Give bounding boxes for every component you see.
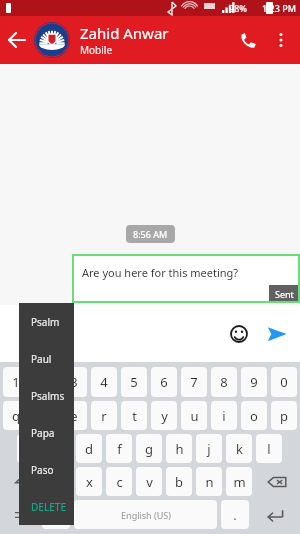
- staticText: 1: [12, 373, 20, 391]
- staticText: 5: [130, 373, 138, 391]
- button[interactable]: v: [136, 467, 162, 496]
- button[interactable]: s: [46, 434, 72, 463]
- button[interactable]: d: [76, 434, 102, 463]
- button[interactable]: z: [47, 467, 72, 496]
- button[interactable]: Are you here for this meeting?: [72, 254, 300, 303]
- button[interactable]: u: [181, 401, 207, 430]
- staticText: 0: [280, 373, 288, 391]
- button[interactable]: p: [271, 401, 297, 430]
- button[interactable]: 9: [241, 367, 267, 397]
- button[interactable]: j: [196, 434, 222, 463]
- button[interactable]: o: [241, 401, 267, 430]
- staticText: 3: [70, 373, 78, 391]
- button[interactable]: 3: [61, 367, 87, 397]
- button[interactable]: b: [166, 467, 192, 496]
- staticText: q: [12, 407, 20, 425]
- button[interactable]: ,: [42, 500, 70, 529]
- button[interactable]: i: [211, 401, 237, 430]
- button[interactable]: 8: [211, 367, 237, 397]
- staticText: ,: [54, 506, 58, 524]
- button[interactable]: Emoji: [224, 319, 254, 349]
- staticText: 8:56 AM: [133, 228, 168, 240]
- staticText: Sent: [275, 288, 294, 300]
- staticText: x: [86, 473, 93, 491]
- staticText: Psalm: [31, 315, 60, 329]
- button[interactable]: Shift: [3, 467, 43, 496]
- staticText: 4: [100, 373, 108, 391]
- staticText: n: [205, 473, 214, 491]
- staticText: Zahid Anwar: [80, 23, 169, 43]
- button[interactable]: DELETE: [19, 488, 74, 525]
- button[interactable]: f: [106, 434, 132, 463]
- staticText: k: [236, 440, 243, 458]
- button[interactable]: x: [76, 467, 102, 496]
- staticText: 6: [160, 373, 168, 391]
- staticText: 1:23 PM: [262, 2, 296, 14]
- button[interactable]: Paul: [19, 340, 74, 377]
- button[interactable]: w: [32, 401, 57, 430]
- button[interactable]: y: [151, 401, 177, 430]
- staticText: t: [132, 407, 137, 425]
- button[interactable]: h: [166, 434, 192, 463]
- button[interactable]: 1: [3, 367, 28, 397]
- button[interactable]: m: [226, 467, 252, 496]
- staticText: u: [190, 407, 199, 425]
- button[interactable]: k: [226, 434, 252, 463]
- staticText: 98%: [229, 2, 247, 14]
- button[interactable]: 4: [91, 367, 117, 397]
- button[interactable]: Backspace: [256, 467, 297, 496]
- button[interactable]: Send: [262, 319, 292, 349]
- button[interactable]: g: [136, 434, 162, 463]
- staticText: e: [70, 407, 78, 425]
- button[interactable]: Papa: [19, 414, 74, 451]
- staticText: Mobile: [80, 43, 113, 57]
- button[interactable]: Call: [230, 22, 266, 58]
- button[interactable]: English (US): [74, 500, 217, 529]
- staticText: English (US): [121, 509, 171, 521]
- button[interactable]: Psalms: [19, 377, 74, 414]
- button[interactable]: Enter: [253, 500, 297, 529]
- button[interactable]: 6: [151, 367, 177, 397]
- staticText: i: [222, 407, 226, 425]
- button[interactable]: t: [121, 401, 147, 430]
- staticText: r: [101, 407, 107, 425]
- staticText: 7: [190, 373, 198, 391]
- button[interactable]: Paso: [19, 451, 74, 488]
- staticText: g: [145, 440, 153, 458]
- button[interactable]: More options: [266, 25, 296, 55]
- button[interactable]: Symbols: [3, 500, 38, 529]
- button[interactable]: 7: [181, 367, 207, 397]
- button[interactable]: n: [196, 467, 222, 496]
- staticText: h: [175, 440, 184, 458]
- staticText: c: [116, 473, 123, 491]
- staticText: l: [267, 440, 271, 458]
- button[interactable]: c: [106, 467, 132, 496]
- staticText: y: [161, 407, 168, 425]
- staticText: Paso: [31, 463, 54, 477]
- button[interactable]: 0: [271, 367, 297, 397]
- button[interactable]: r: [91, 401, 117, 430]
- staticText: b: [175, 473, 183, 491]
- button[interactable]: Back: [0, 23, 34, 57]
- staticText: v: [146, 473, 153, 491]
- staticText: 8: [220, 373, 228, 391]
- button[interactable]: a: [17, 434, 42, 463]
- button[interactable]: 5: [121, 367, 147, 397]
- button[interactable]: 2: [32, 367, 57, 397]
- staticText: f: [117, 440, 122, 458]
- button[interactable]: e: [61, 401, 87, 430]
- staticText: d: [85, 440, 93, 458]
- staticText: p: [280, 407, 288, 425]
- staticText: o: [250, 407, 258, 425]
- button[interactable]: l: [256, 434, 282, 463]
- staticText: Psalms: [31, 389, 65, 403]
- staticText: Are you here for this meeting?: [82, 265, 239, 280]
- button[interactable]: Psalm: [19, 303, 74, 340]
- button[interactable]: .: [221, 500, 249, 529]
- button[interactable]: q: [3, 401, 28, 430]
